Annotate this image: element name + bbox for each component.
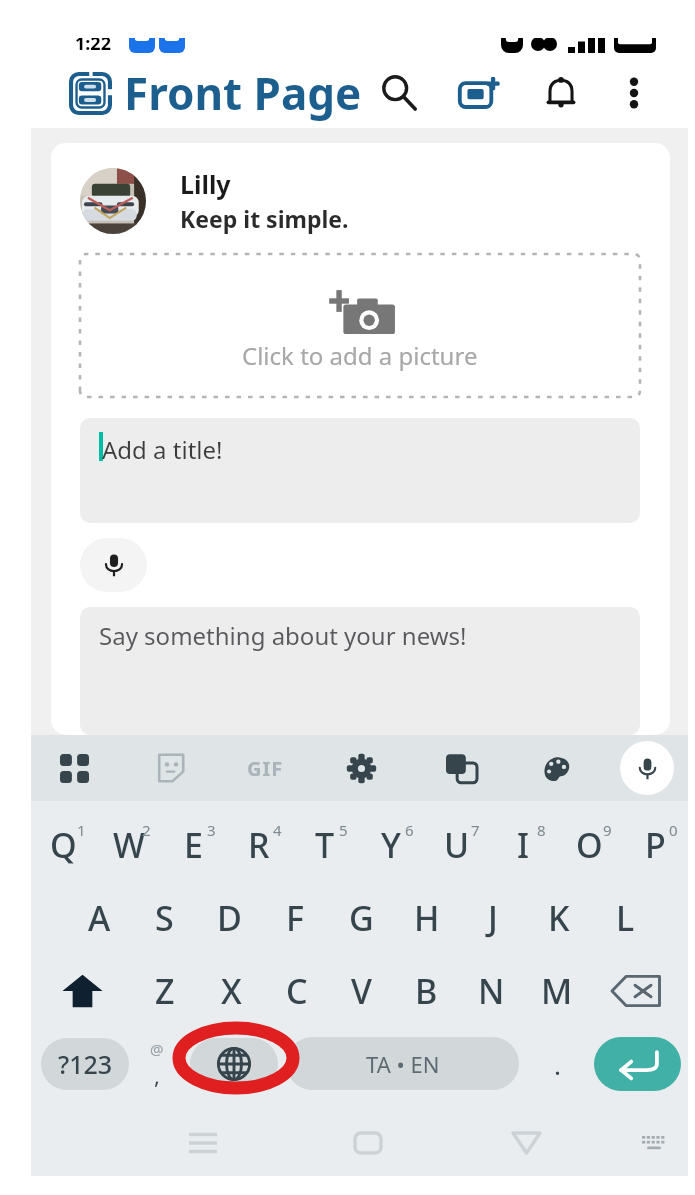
button[interactable]: . [533, 1038, 581, 1090]
button[interactable]: Voice input [80, 538, 147, 592]
staticText: B [415, 968, 438, 1014]
button[interactable]: Hide keyboard [621, 1110, 687, 1176]
button[interactable]: Notifications [538, 58, 584, 128]
button[interactable]: More options [612, 58, 656, 128]
button[interactable]: GIF [225, 735, 305, 801]
staticText: H [414, 895, 440, 941]
button[interactable]: Voice typing [620, 741, 674, 795]
staticText: Lilly [180, 167, 231, 201]
button[interactable]: L [592, 890, 658, 946]
button[interactable]: T [292, 817, 358, 873]
button[interactable]: U [424, 817, 490, 873]
button[interactable]: Search [377, 58, 423, 128]
staticText: TA • EN [366, 1049, 440, 1079]
button[interactable]: A [67, 890, 132, 946]
staticText: , [154, 1060, 160, 1090]
button[interactable]: F [262, 890, 328, 946]
button[interactable]: Y [358, 817, 424, 873]
staticText: 3 [207, 820, 216, 840]
staticText: 8 [537, 820, 546, 840]
staticText: Say something about your news! [99, 619, 467, 652]
button[interactable]: TA • EN [286, 1037, 519, 1090]
button[interactable]: Themes [516, 735, 596, 801]
button[interactable]: X [198, 963, 264, 1019]
button[interactable]: Shift [31, 963, 132, 1019]
button[interactable]: P [622, 817, 688, 873]
button[interactable]: Z [132, 963, 198, 1019]
staticText: 7 [471, 820, 480, 840]
button[interactable]: J [460, 890, 526, 946]
button[interactable]: E [161, 817, 226, 873]
staticText: V [351, 968, 372, 1014]
button[interactable]: Say something about your news! [80, 607, 640, 735]
staticText: L [616, 895, 635, 941]
button[interactable]: Home [328, 1110, 408, 1176]
button[interactable]: Stickers [130, 735, 210, 801]
button[interactable]: Settings [321, 735, 401, 801]
staticText: O [576, 822, 603, 868]
staticText: F [286, 895, 304, 941]
button[interactable]: Q [31, 817, 96, 873]
staticText: GIF [247, 755, 284, 782]
staticText: N [478, 968, 505, 1014]
button[interactable]: Lilly [80, 167, 349, 234]
staticText: 0 [669, 820, 678, 840]
staticText: ?123 [58, 1047, 113, 1081]
button[interactable]: @ [135, 1038, 179, 1090]
button[interactable]: V [329, 963, 394, 1019]
staticText: . [554, 1047, 561, 1082]
staticText: A [88, 895, 111, 941]
button[interactable]: B [394, 963, 459, 1019]
button[interactable]: Change language [190, 1038, 278, 1090]
button[interactable]: M [524, 963, 589, 1019]
staticText: 1 [77, 820, 86, 840]
button[interactable]: S [132, 890, 197, 946]
button[interactable]: H [394, 890, 460, 946]
button[interactable]: O [556, 817, 622, 873]
button[interactable]: R [226, 817, 292, 873]
button[interactable]: C [264, 963, 329, 1019]
staticText: S [155, 895, 174, 941]
button[interactable]: Add a title! [80, 418, 640, 523]
staticText: G [349, 895, 374, 941]
staticText: Y [381, 822, 401, 868]
button[interactable]: I [490, 817, 556, 873]
button[interactable]: Apps [34, 735, 114, 801]
staticText: Keep it simple. [180, 203, 349, 234]
button[interactable]: Translate [421, 735, 501, 801]
staticText: Click to add a picture [242, 339, 478, 372]
button[interactable]: Create post [457, 58, 503, 128]
staticText: @ [150, 1039, 164, 1059]
staticText: 9 [603, 820, 612, 840]
staticText: W [113, 822, 145, 868]
staticText: Add a title! [102, 433, 223, 466]
button[interactable]: N [459, 963, 524, 1019]
staticText: 5 [339, 820, 348, 840]
staticText: E [184, 822, 203, 868]
staticText: 6 [405, 820, 414, 840]
staticText: R [248, 822, 270, 868]
button[interactable]: Back [486, 1110, 566, 1176]
button[interactable]: ?123 [41, 1038, 129, 1090]
staticText: 4 [273, 820, 282, 840]
button[interactable]: Front Page [69, 58, 362, 128]
button[interactable]: Menu [163, 1110, 243, 1176]
staticText: C [286, 968, 308, 1014]
button[interactable]: K [526, 890, 592, 946]
staticText: X [221, 968, 242, 1014]
staticText: M [541, 968, 573, 1014]
button[interactable]: Click to add a picture [80, 254, 640, 397]
button[interactable]: Enter [594, 1037, 681, 1091]
staticText: D [217, 895, 242, 941]
staticText: J [488, 895, 498, 941]
staticText: 1:22 [75, 31, 111, 56]
staticText: Q [50, 822, 77, 868]
button[interactable]: D [197, 890, 262, 946]
staticText: Z [155, 968, 175, 1014]
staticText: 2 [142, 820, 151, 840]
staticText: K [548, 895, 570, 941]
button[interactable]: W [96, 817, 161, 873]
button[interactable]: Backspace [589, 963, 688, 1019]
staticText: U [444, 822, 470, 868]
button[interactable]: G [328, 890, 394, 946]
